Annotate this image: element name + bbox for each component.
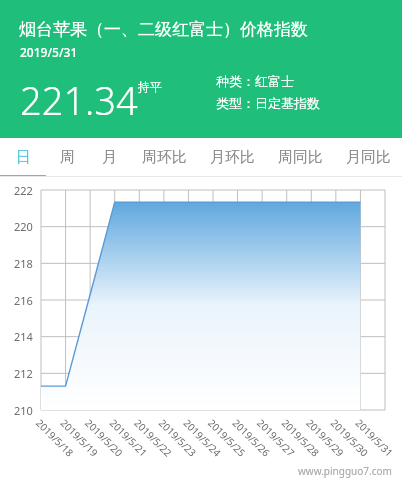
staticText: 月环比 [210, 148, 255, 167]
staticText: 持平 [138, 79, 162, 94]
button[interactable]: 日 [0, 138, 46, 177]
staticText: 类型：日定基指数 [216, 95, 320, 111]
button[interactable]: 周 [46, 138, 88, 177]
staticText: 2019/5/31 [20, 44, 78, 60]
button[interactable]: 月同比 [334, 138, 402, 177]
staticText: 221.34 [20, 74, 138, 126]
staticText: 烟台苹果（一、二级红富士）价格指数 [19, 19, 308, 40]
staticText: 周环比 [142, 148, 187, 167]
staticText: 周 [60, 148, 75, 167]
staticText: 周同比 [278, 148, 323, 167]
button[interactable]: 周同比 [266, 138, 334, 177]
staticText: 月同比 [346, 148, 391, 167]
button[interactable]: 周环比 [130, 138, 198, 177]
staticText: 日 [16, 148, 31, 167]
staticText: 月 [102, 148, 117, 167]
button[interactable]: 月 [88, 138, 130, 177]
staticText: 种类：红富士 [216, 73, 294, 89]
staticText: www.pingguo7.com [298, 464, 392, 478]
button[interactable]: 月环比 [198, 138, 266, 177]
